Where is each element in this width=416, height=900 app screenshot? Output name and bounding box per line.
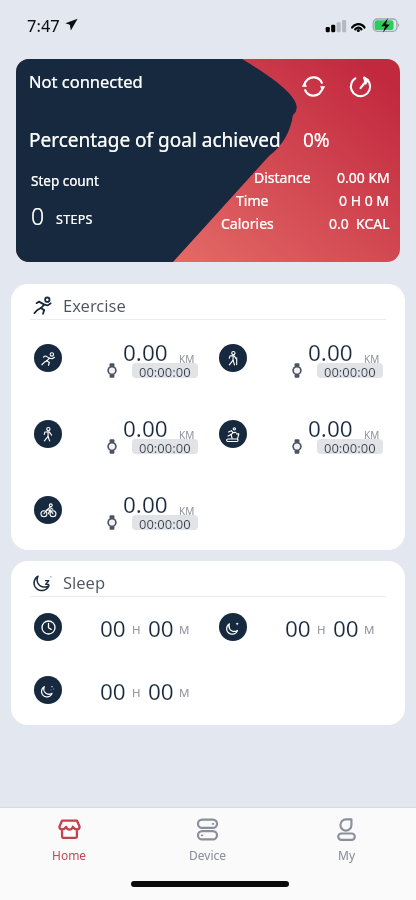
staticText: KM — [179, 428, 195, 442]
button[interactable]: Not connected — [16, 59, 400, 262]
staticText: 00 — [148, 676, 174, 704]
staticText: 00:00:00 — [139, 439, 191, 454]
staticText: Distance — [254, 168, 311, 187]
staticText: 00:00:00 — [324, 363, 376, 378]
staticText: 00 — [148, 613, 174, 641]
button[interactable]: 0.00 — [34, 487, 216, 535]
staticText: H — [132, 622, 141, 638]
staticText: Percentage of goal achieved — [29, 127, 281, 153]
staticText: Time — [236, 191, 269, 210]
staticText: 0.00 — [123, 337, 168, 368]
button[interactable]: Device — [138, 808, 277, 866]
staticText: Step count — [31, 172, 99, 190]
staticText: 00:00:00 — [324, 439, 376, 454]
staticText: 0.00 — [123, 413, 168, 444]
staticText: My — [338, 847, 356, 863]
staticText: 0.0 KCAL — [329, 214, 390, 233]
staticText: STEPS — [56, 211, 93, 228]
staticText: Not connected — [29, 70, 143, 92]
staticText: Calories — [221, 214, 274, 233]
staticText: M — [179, 685, 190, 701]
staticText: 00 — [100, 613, 126, 641]
button[interactable]: Refresh — [344, 70, 376, 102]
button[interactable]: My — [277, 808, 416, 866]
staticText: 0% — [303, 127, 330, 153]
staticText: Home — [52, 847, 87, 863]
staticText: 00 — [333, 613, 359, 641]
staticText: 00 — [100, 676, 126, 704]
staticText: 00 — [285, 613, 311, 641]
button[interactable]: Sync data — [297, 70, 329, 102]
staticText: KM — [179, 352, 195, 366]
staticText: Device — [189, 847, 227, 863]
staticText: Exercise — [63, 294, 126, 316]
staticText: 0.00 — [308, 413, 353, 444]
staticText: 0.00 KM — [337, 168, 390, 187]
staticText: 0.00 — [123, 489, 168, 520]
staticText: 0 — [31, 200, 45, 231]
button[interactable]: 0.00 — [219, 335, 401, 383]
button[interactable]: Home — [0, 808, 138, 866]
button[interactable]: 0.00 — [219, 411, 401, 459]
button[interactable]: 0.00 — [34, 335, 216, 383]
staticText: M — [179, 622, 190, 638]
staticText: 7:47 — [27, 14, 60, 36]
staticText: H — [132, 685, 141, 701]
staticText: KM — [364, 428, 380, 442]
staticText: KM — [179, 504, 195, 518]
button[interactable]: 0.00 — [34, 411, 216, 459]
staticText: 0.00 — [308, 337, 353, 368]
staticText: 00:00:00 — [139, 515, 191, 530]
staticText: H — [317, 622, 326, 638]
staticText: 00:00:00 — [139, 363, 191, 378]
button[interactable]: 00 — [34, 676, 216, 706]
staticText: 0 H 0 M — [339, 191, 390, 210]
button[interactable]: 00 — [219, 613, 401, 643]
button[interactable]: 00 — [34, 613, 216, 643]
staticText: Sleep — [63, 571, 106, 593]
staticText: M — [364, 622, 375, 638]
staticText: KM — [364, 352, 380, 366]
